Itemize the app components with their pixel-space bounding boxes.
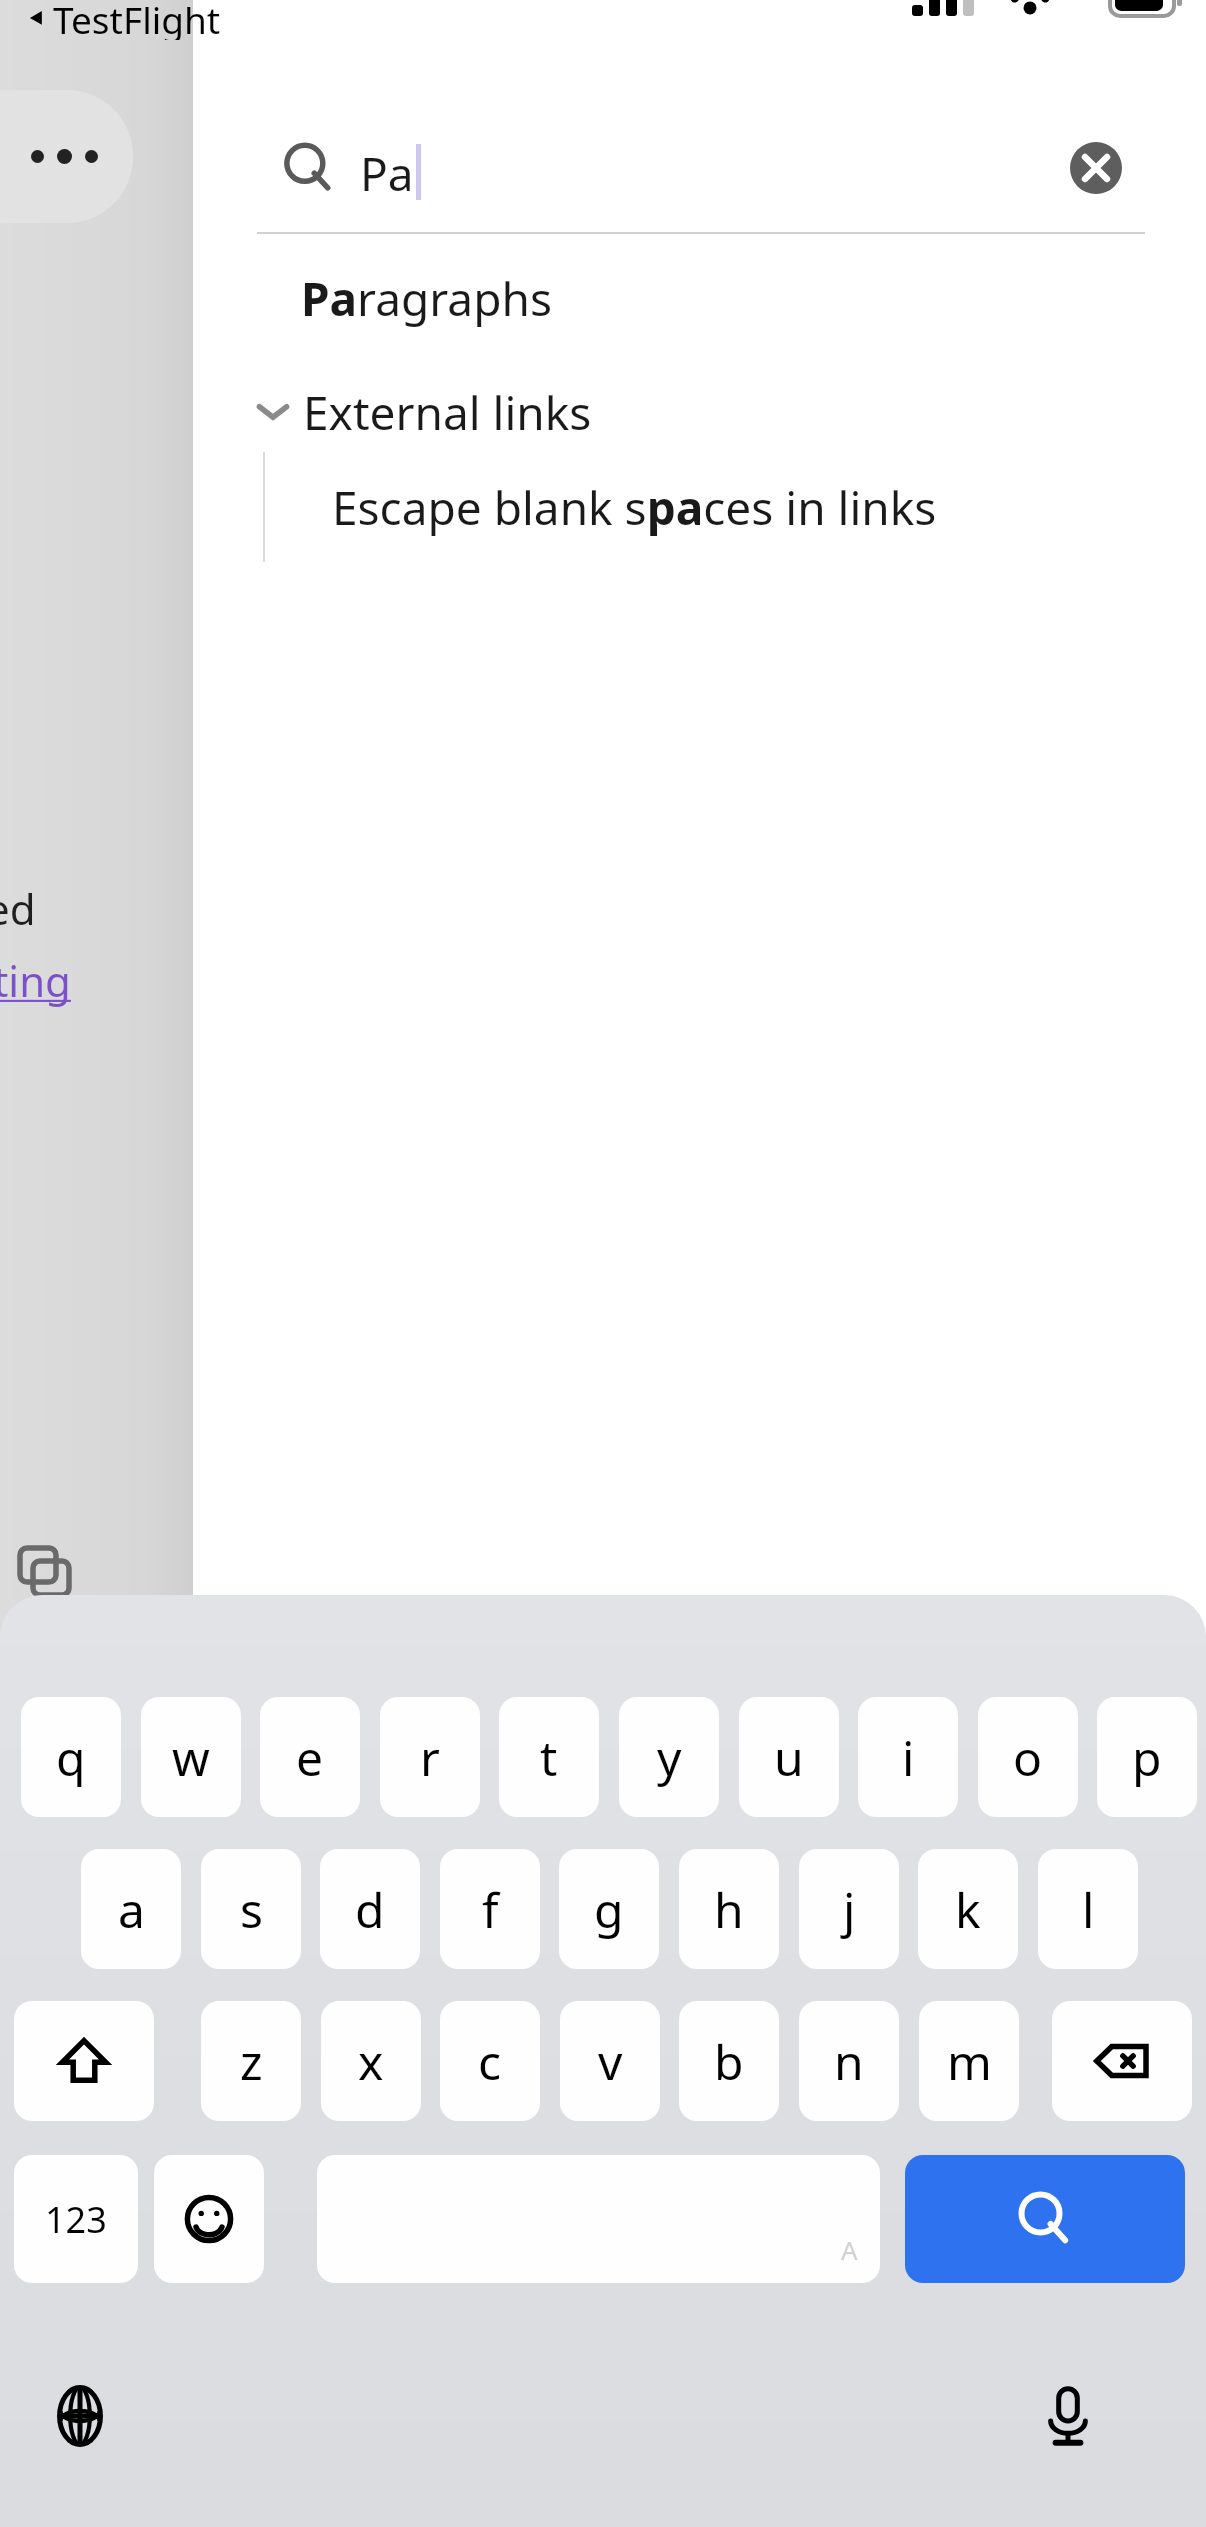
staticText: z: [240, 2029, 263, 2094]
staticText: b: [714, 2029, 744, 2094]
button[interactable]: x: [321, 2001, 421, 2121]
other: Search: [283, 142, 335, 194]
staticText: i: [902, 1725, 915, 1790]
button[interactable]: o: [978, 1697, 1078, 1817]
button[interactable]: a: [81, 1849, 181, 1969]
staticText: d: [355, 1877, 385, 1942]
button[interactable]: h: [679, 1849, 779, 1969]
button[interactable]: Dictation: [1024, 2372, 1112, 2460]
button[interactable]: i: [858, 1697, 958, 1817]
button[interactable]: l: [1038, 1849, 1138, 1969]
staticText: ed: [0, 880, 36, 937]
staticText: p: [1132, 1725, 1162, 1790]
button[interactable]: TestFlight: [26, 0, 221, 40]
staticText: g: [594, 1877, 624, 1942]
staticText: f: [482, 1877, 499, 1942]
staticText: q: [56, 1725, 86, 1790]
button[interactable]: s: [201, 1849, 301, 1969]
staticText: o: [1013, 1725, 1043, 1790]
button[interactable]: v: [560, 2001, 660, 2121]
staticText: Pa: [360, 142, 414, 205]
staticText: w: [172, 1725, 210, 1790]
staticText: s: [240, 1877, 263, 1942]
staticText: 123: [45, 2195, 107, 2244]
staticText: a: [118, 1877, 145, 1942]
button[interactable]: e: [260, 1697, 360, 1817]
button[interactable]: c: [440, 2001, 540, 2121]
button[interactable]: q: [21, 1697, 121, 1817]
button[interactable]: Paragraphs: [193, 258, 1206, 338]
button[interactable]: f: [440, 1849, 540, 1969]
button[interactable]: b: [679, 2001, 779, 2121]
staticText: l: [1082, 1877, 1095, 1942]
button[interactable]: z: [201, 2001, 301, 2121]
button[interactable]: m: [919, 2001, 1019, 2121]
button[interactable]: g: [559, 1849, 659, 1969]
button[interactable]: More options: [0, 90, 133, 223]
button[interactable]: w: [141, 1697, 241, 1817]
button[interactable]: j: [799, 1849, 899, 1969]
staticText: tting: [0, 952, 71, 1009]
staticText: c: [478, 2029, 502, 2094]
button[interactable]: u: [739, 1697, 839, 1817]
button[interactable]: r: [380, 1697, 480, 1817]
staticText: e: [296, 1725, 324, 1790]
staticText: h: [714, 1877, 744, 1942]
staticText: y: [657, 1725, 682, 1790]
button[interactable]: n: [799, 2001, 899, 2121]
button[interactable]: Backspace: [1052, 2001, 1192, 2121]
button[interactable]: k: [918, 1849, 1018, 1969]
staticText: External links: [303, 381, 592, 444]
staticText: m: [947, 2029, 992, 2094]
staticText: TestFlight: [53, 0, 221, 40]
button[interactable]: t: [499, 1697, 599, 1817]
staticText: j: [843, 1877, 856, 1942]
staticText: n: [834, 2029, 864, 2094]
staticText: u: [774, 1725, 804, 1790]
button[interactable]: 123: [14, 2155, 138, 2283]
button[interactable]: Clear search: [1070, 142, 1122, 194]
button[interactable]: Escape blank spaces in links: [193, 452, 1206, 562]
button[interactable]: Search: [905, 2155, 1185, 2283]
staticText: Escape blank spaces in links: [332, 476, 937, 539]
staticText: A: [841, 2232, 858, 2267]
button[interactable]: Emoji: [154, 2155, 264, 2283]
button[interactable]: Shift: [14, 2001, 154, 2121]
staticText: k: [955, 1877, 981, 1942]
button[interactable]: External links: [193, 370, 1206, 454]
staticText: v: [598, 2029, 623, 2094]
button[interactable]: p: [1097, 1697, 1197, 1817]
button[interactable]: d: [320, 1849, 420, 1969]
staticText: x: [358, 2029, 384, 2094]
staticText: t: [540, 1725, 558, 1790]
button[interactable]: Switch language: [36, 2372, 124, 2460]
staticText: r: [420, 1725, 440, 1790]
button[interactable]: y: [619, 1697, 719, 1817]
staticText: Paragraphs: [301, 267, 552, 330]
